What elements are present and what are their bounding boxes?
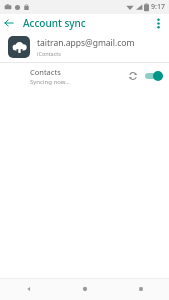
staticText: Account sync (23, 16, 86, 30)
staticText: taitran.apps@gmail.com (37, 37, 135, 49)
button[interactable]: taitran.apps@gmail.com (0, 32, 169, 62)
button[interactable]: Home (57, 278, 113, 300)
staticText: Contacts (30, 67, 61, 77)
staticText: iContacts (37, 50, 61, 57)
staticText: 9:17 (151, 2, 165, 12)
button[interactable]: Back (0, 14, 18, 32)
button[interactable]: More options (149, 14, 167, 32)
other: Syncing (126, 69, 140, 83)
staticText: Syncing now... (30, 78, 70, 86)
button[interactable]: Back (0, 278, 57, 300)
button[interactable]: Recent apps (113, 278, 169, 300)
button[interactable]: Sync Contacts toggle (144, 69, 164, 83)
button[interactable]: Contacts (0, 63, 169, 89)
